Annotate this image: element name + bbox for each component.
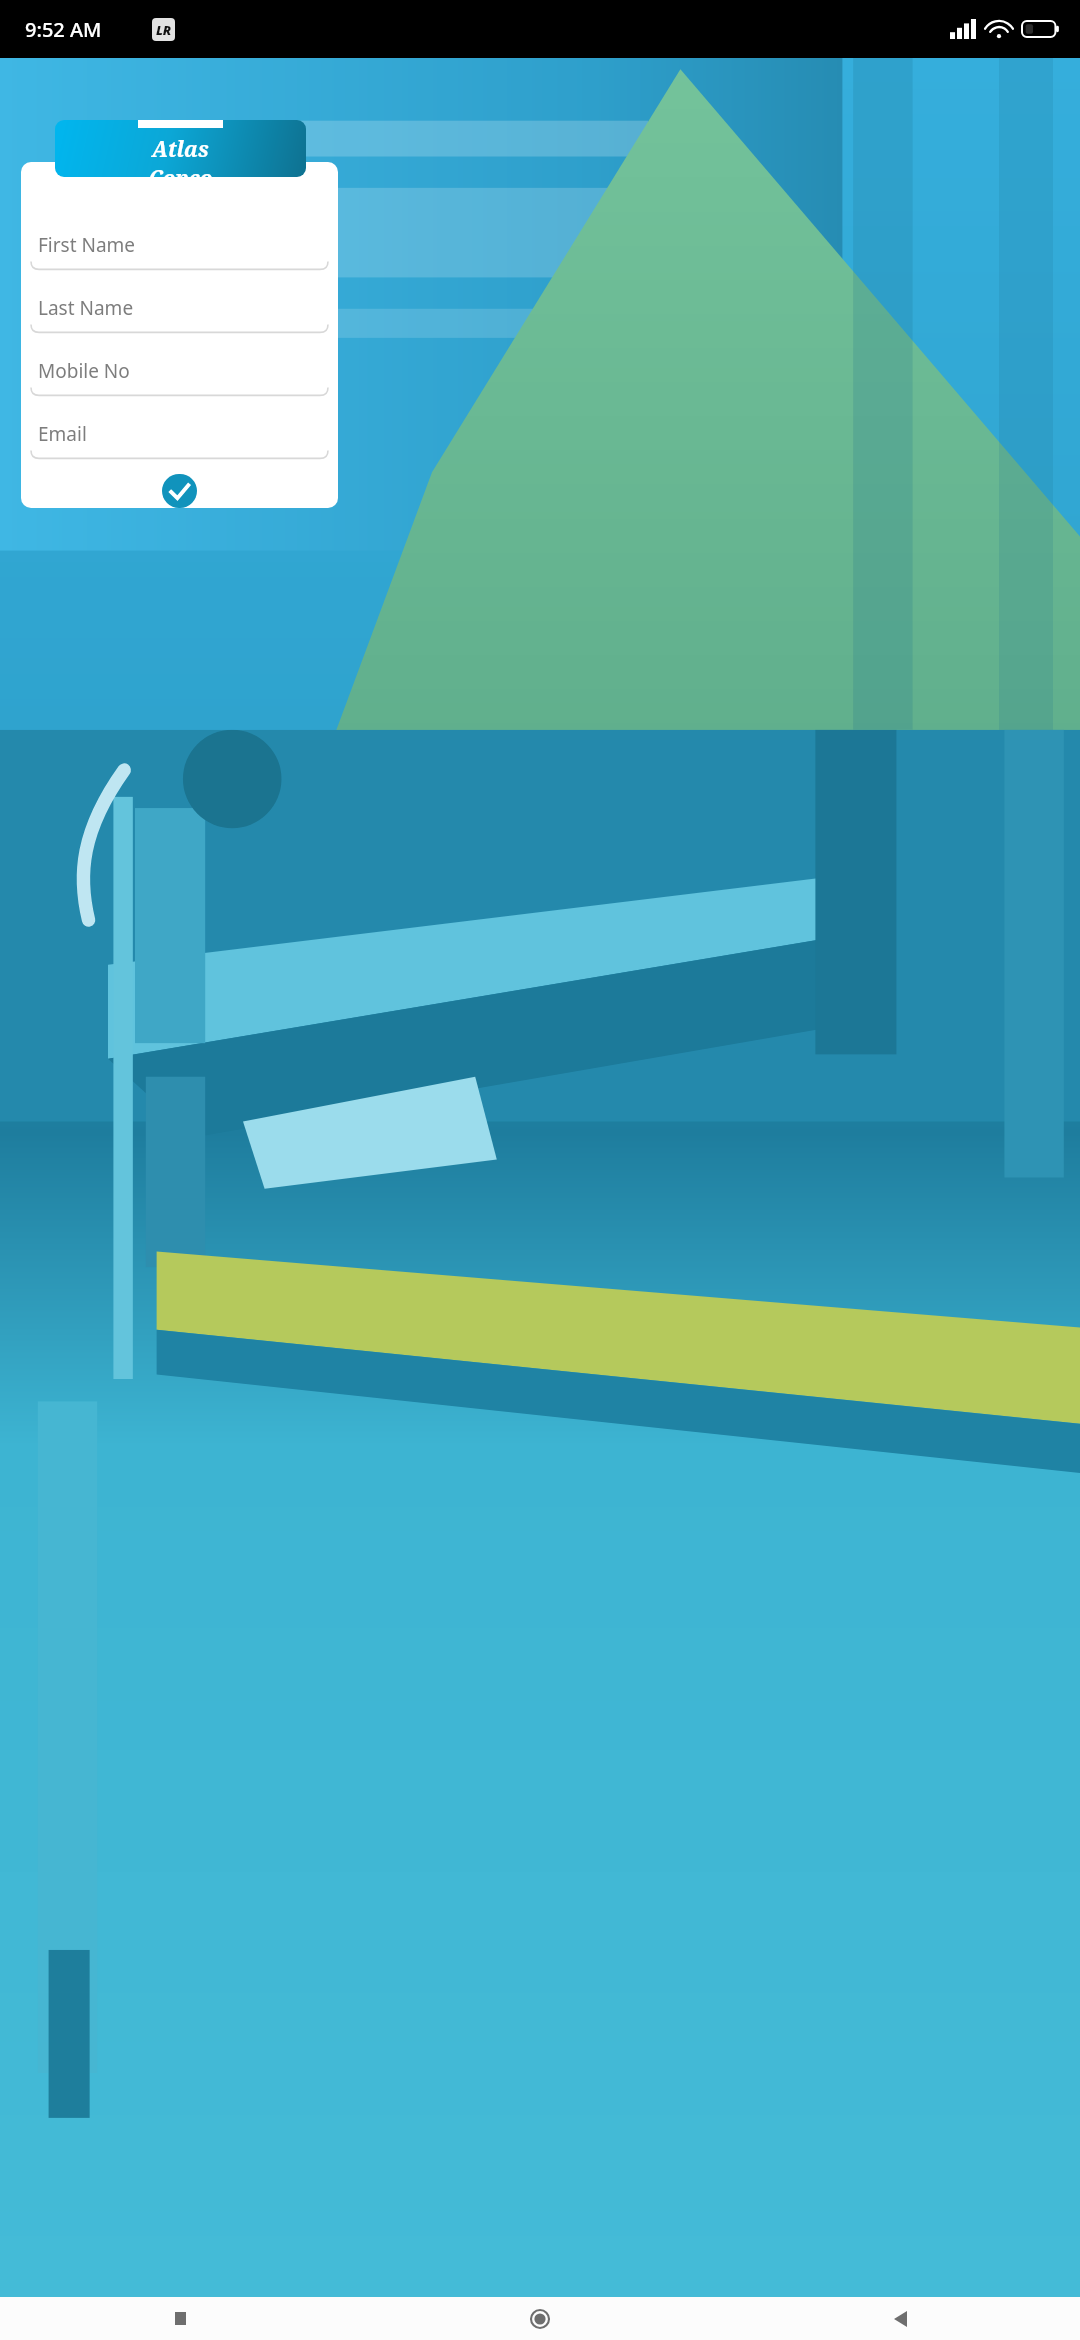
button[interactable]: Mobile No [31, 354, 328, 397]
staticText: LR [156, 21, 172, 39]
button[interactable]: Email [31, 417, 328, 460]
button[interactable]: Back [720, 2297, 1080, 2340]
staticText: Last Name [38, 295, 134, 321]
staticText: Mobile No [38, 358, 130, 384]
staticText: Atlas Copco [138, 135, 223, 177]
staticText: Email [38, 421, 87, 447]
button[interactable]: First Name [31, 228, 328, 271]
button[interactable]: Recent apps [0, 2297, 360, 2340]
button[interactable]: Last Name [31, 291, 328, 334]
button[interactable]: Home [360, 2297, 720, 2340]
button[interactable]: Atlas Copco [55, 120, 306, 177]
button[interactable]: Submit [162, 474, 197, 508]
staticText: First Name [38, 232, 136, 258]
staticText: 9:52 AM [25, 16, 102, 43]
